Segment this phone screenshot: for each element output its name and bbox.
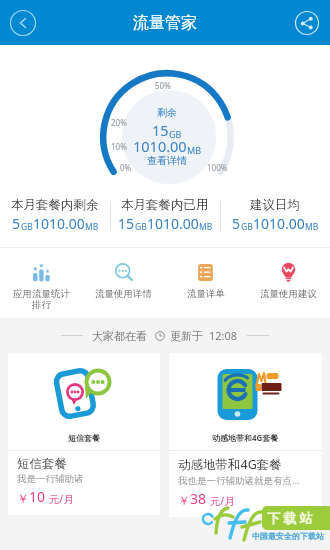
staticText: MB [85,221,99,233]
staticText: MB [187,144,202,156]
staticText: 15 [152,120,169,140]
button[interactable]: 流量使用建议 [247,249,330,318]
staticText: 100% [207,162,228,173]
staticText: 20% [111,117,127,128]
button[interactable]: Back [9,9,37,37]
staticText: 更新于 [170,329,203,343]
staticText: ￥ [178,493,190,508]
staticText: 查看详情 [147,154,187,167]
staticText: 元/月 [46,492,74,506]
staticText: 10 [29,487,46,506]
staticText: 我也是一行辅助诸就是有点... [178,474,300,487]
button[interactable]: Share [294,10,320,36]
staticText: 流量使用建议 [260,288,317,300]
staticText: 本月套餐内剩余 [11,197,99,213]
staticText: 1010.00 [147,214,199,233]
staticText: 15 [118,214,135,233]
staticText: 短信套餐 [68,433,100,443]
staticText: 我是一行辅助诸 [17,473,84,485]
staticText: GB [135,221,147,233]
staticText: 流量管家 [133,13,197,33]
staticText: 流量使用详情 [95,288,152,300]
staticText: 本月套餐内已用 [121,197,209,213]
staticText: 流量详单 [187,288,225,300]
staticText: GB [21,221,33,233]
staticText: 50% [155,80,171,91]
staticText: 大家都在看 [92,329,147,343]
button[interactable]: 流量详单 [164,249,247,318]
button[interactable]: 本月套餐内剩余 [0,188,110,248]
staticText: MB [199,221,213,233]
button[interactable]: 本月套餐内已用 [110,188,220,248]
staticText: 应用流量统计 排行 [13,288,70,311]
staticText: GB [241,221,253,233]
staticText: 12:08 [209,328,238,343]
staticText: 动感地带和4G套餐 [212,432,279,443]
staticText: 动感地带和4G套餐 [178,456,282,473]
staticText: 1010.00 [33,214,85,233]
button[interactable]: 流量使用详情 [82,249,164,318]
staticText: MB [305,221,319,233]
staticText: 中国最安全的下载站 [252,531,324,541]
staticText: 元/月 [207,494,235,508]
staticText: 1010.00 [133,136,187,156]
button[interactable]: 动感地带和4G套餐 [169,353,322,517]
button[interactable]: 剩余 [119,106,215,168]
button[interactable]: 建议日均 [220,188,330,248]
staticText: ￥ [17,491,29,506]
staticText: GB [169,128,182,140]
button[interactable]: 应用流量统计 排行 [0,249,82,318]
staticText: 5 [232,214,241,233]
staticText: 5 [12,214,21,233]
staticText: 10% [111,141,127,152]
staticText: 短信套餐 [17,456,67,472]
staticText: 38 [190,489,207,508]
staticText: 1010.00 [253,214,305,233]
staticText: 剩余 [157,106,177,119]
staticText: 下 载 站 [267,509,313,527]
staticText: 0% [120,162,132,173]
button[interactable]: 短信套餐 [8,353,160,515]
staticText: 建议日均 [250,197,300,213]
